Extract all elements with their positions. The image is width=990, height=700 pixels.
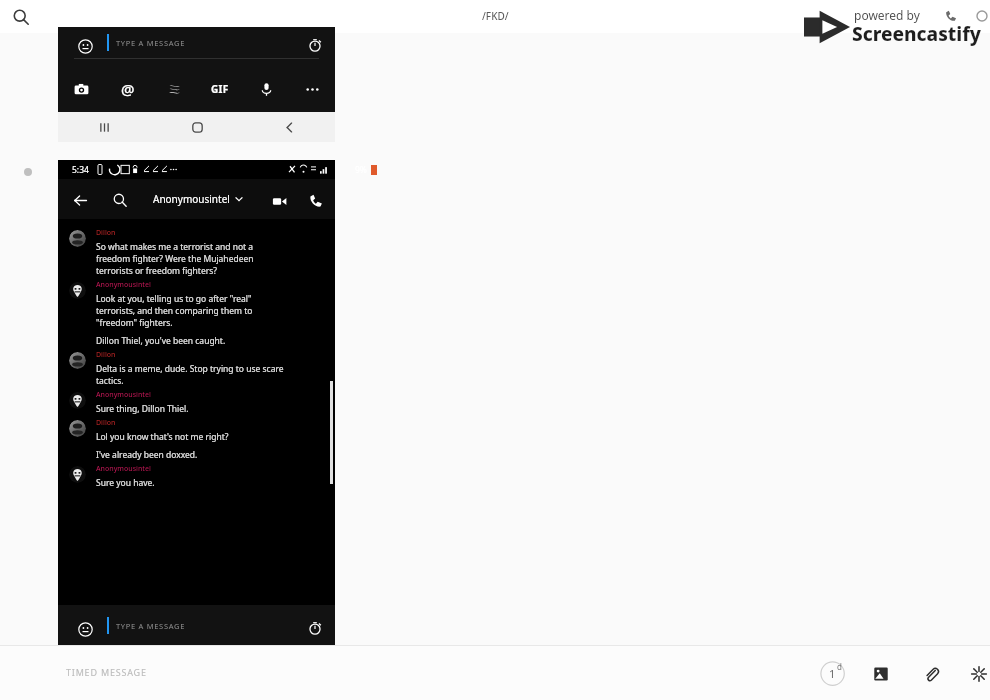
button[interactable]: Call [941,6,961,26]
staticText: 5:34 [72,164,89,176]
staticText: Dillon [96,350,116,360]
staticText: "freedom" fighters. [96,317,173,329]
button[interactable]: Search [8,4,34,30]
staticText: @ [121,79,135,99]
staticText: TIMED MESSAGE [66,666,147,678]
staticText: Anonymousintel [96,464,151,474]
button[interactable]: More [289,69,335,109]
staticText: freedom fighter? Were the Mujahedeen [96,253,254,265]
staticText: Delta is a meme, dude. Stop trying to us… [96,363,284,375]
staticText: Dillon [96,228,116,238]
staticText: powered by [854,7,920,23]
staticText: terrorists, and then comparing them to [96,305,253,317]
staticText: So what makes me a terrorist and not a [96,241,254,253]
staticText: Anonymousintel [153,192,230,206]
button[interactable]: Attach file [918,661,944,687]
staticText: I've already been doxxed. [96,449,198,461]
button[interactable]: Home [151,112,243,142]
button[interactable]: Back [243,112,335,142]
button[interactable]: Add image [868,661,894,687]
button[interactable]: Voice message [243,69,289,109]
button[interactable]: Stickers [151,69,197,109]
staticText: TYPE A MESSAGE [116,38,186,48]
button[interactable]: Message timer 1 day [820,658,850,688]
staticText: Sure you have. [96,477,155,489]
button[interactable]: GIF [197,69,243,109]
button[interactable]: Video call [268,190,290,212]
button[interactable]: Mention [105,69,151,109]
button[interactable]: Camera [58,69,105,109]
button[interactable]: Emoji [75,619,95,639]
button[interactable]: Timer [305,35,325,55]
button[interactable]: Emoji [75,36,95,56]
staticText: Screencastify [852,21,982,47]
staticText: Dillon Thiel, you've been caught. [96,335,226,347]
button[interactable]: Timer [305,618,325,638]
staticText: terrorists or freedom fighters? [96,265,217,277]
staticText: 1 [829,666,836,681]
staticText: Sure thing, Dillon Thiel. [96,403,189,415]
staticText: Lol you know that's not me right? [96,431,229,443]
button[interactable]: Back [70,190,90,210]
staticText: tactics. [96,375,124,387]
staticText: TYPE A MESSAGE [116,621,186,631]
staticText: Dillon [96,418,116,428]
staticText: d [837,661,842,672]
button[interactable]: Info [972,6,990,26]
staticText: GIF [211,82,229,96]
staticText: Anonymousintel [96,390,151,400]
staticText: Anonymousintel [96,280,151,290]
staticText: /FKD/ [482,9,509,23]
button[interactable]: Anonymousintel [153,189,243,209]
button[interactable]: Effects [966,661,990,687]
button[interactable]: Search [110,190,130,210]
button[interactable]: Voice call [305,190,327,212]
staticText: Look at you, telling us to go after "rea… [96,293,252,305]
button[interactable]: Recents [58,112,151,142]
